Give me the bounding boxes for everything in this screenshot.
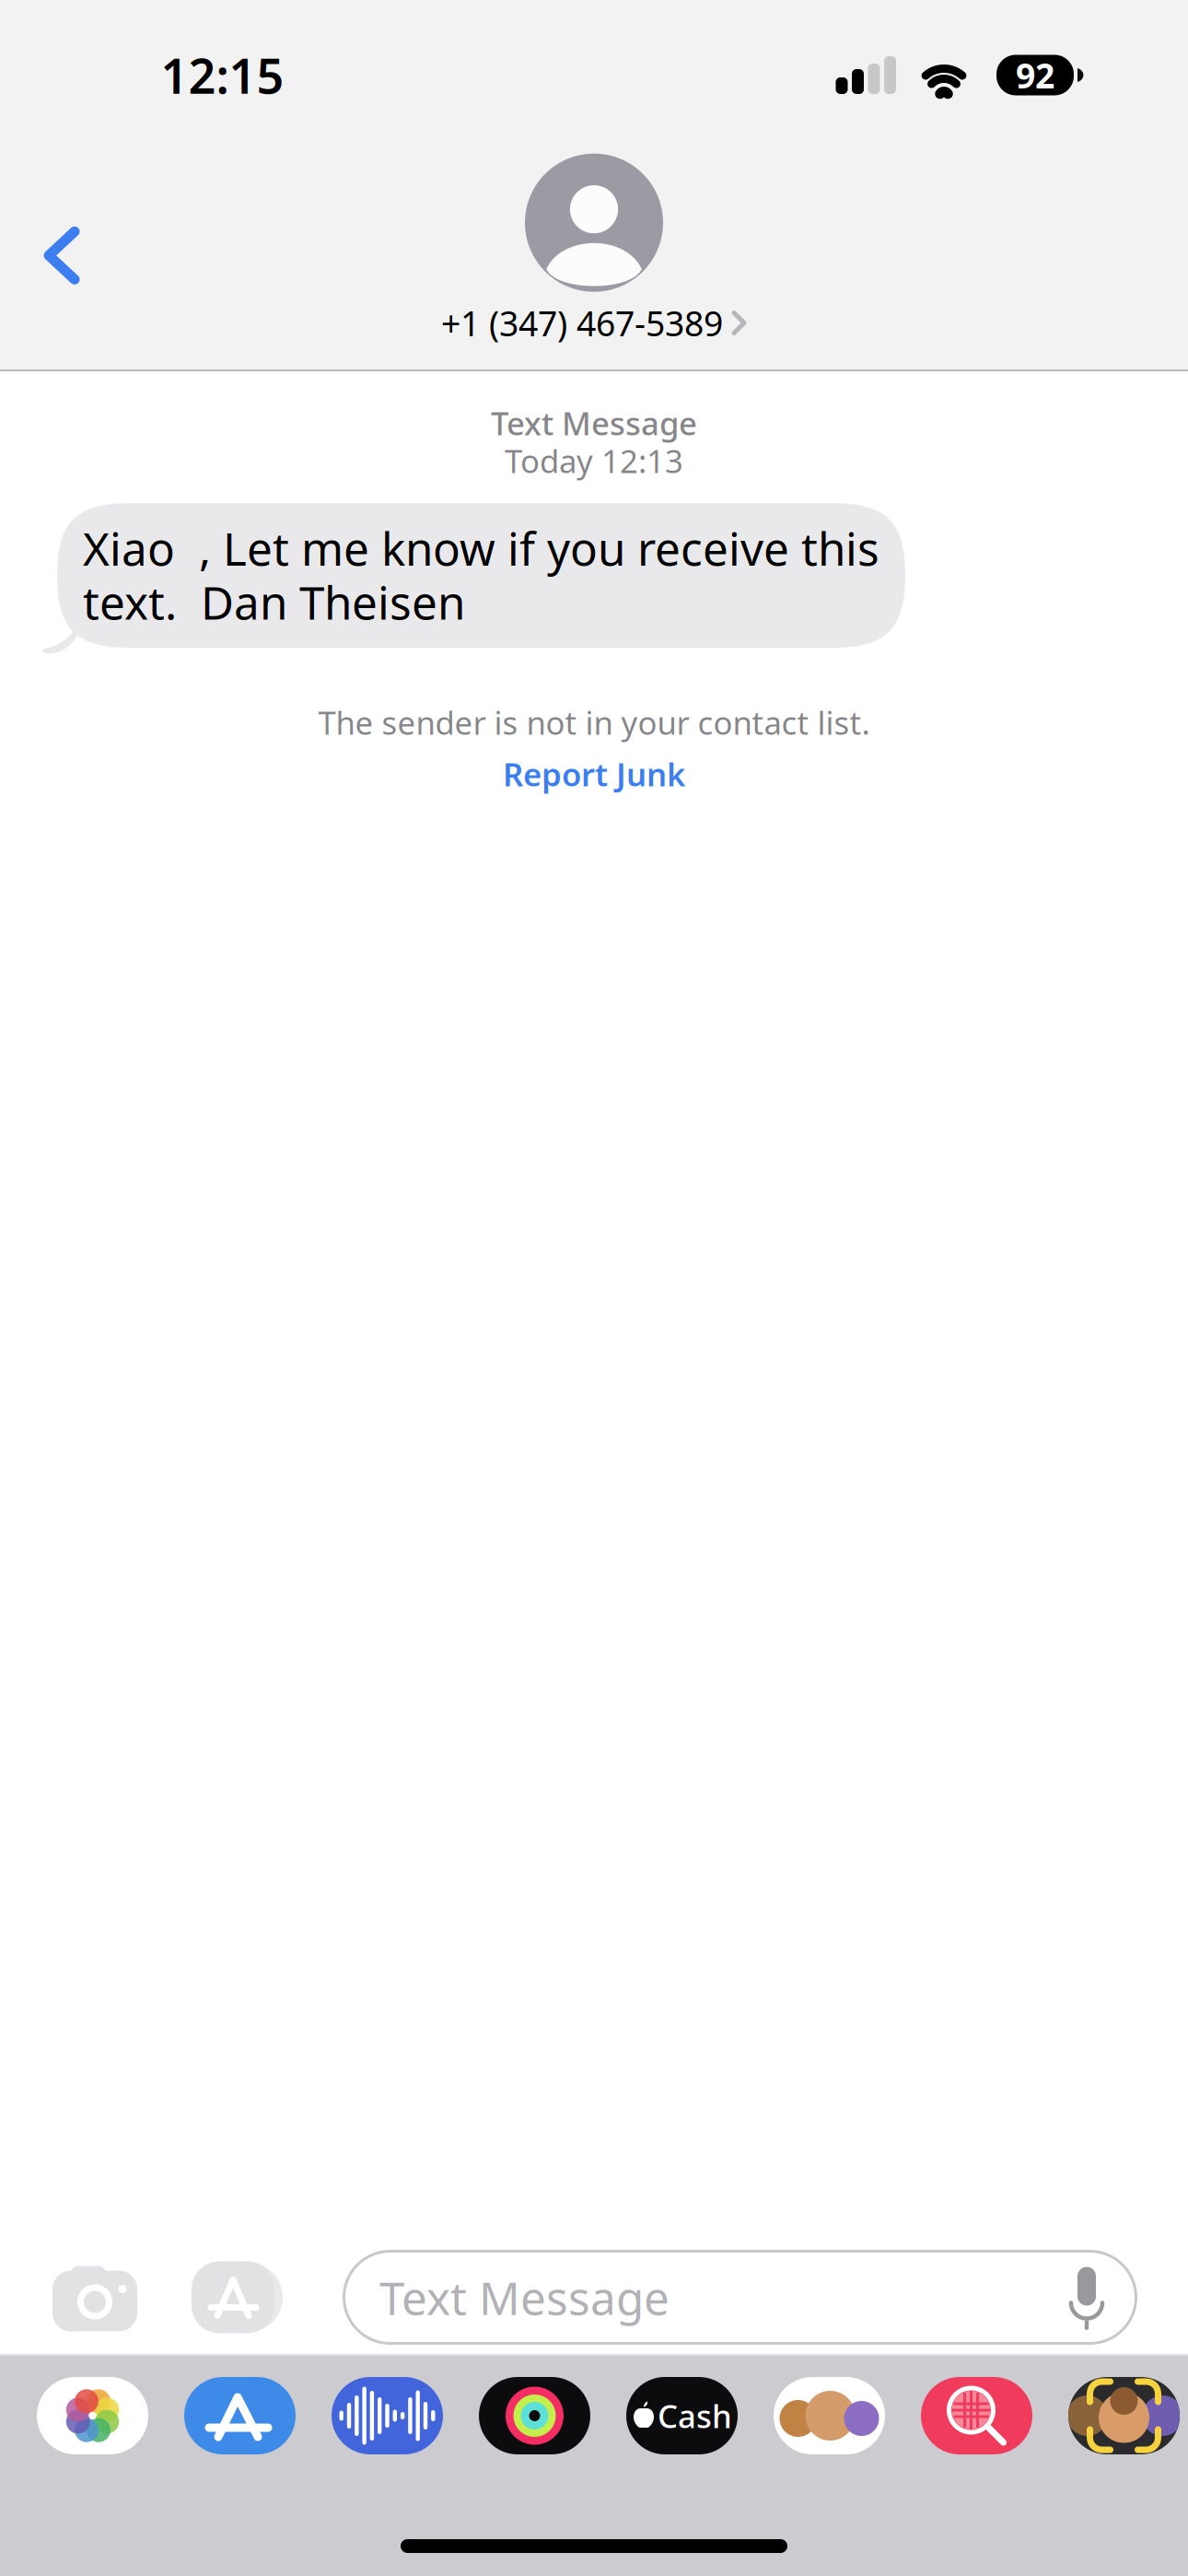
staticText: +1 (347) 467-5389 [441, 300, 723, 346]
button[interactable]: Camera [44, 2247, 146, 2348]
button[interactable]: Memoji Stickers [1068, 2377, 1180, 2454]
button[interactable]: Back [6, 200, 117, 311]
staticText: 92 [1016, 52, 1054, 98]
button[interactable]: Apps [182, 2247, 284, 2348]
button[interactable]: App Store [184, 2377, 296, 2454]
button[interactable]: Images [921, 2377, 1032, 2454]
button[interactable]: Audio [332, 2377, 443, 2454]
button[interactable]: Apple Cash [626, 2377, 738, 2454]
staticText: 12:15 [161, 43, 284, 107]
staticText: Xiao , Let me know if you receive this t… [83, 518, 879, 632]
staticText: The sender is not in your contact list. [318, 701, 870, 744]
staticText: Today 12:13 [505, 439, 683, 482]
staticText: Text Message [491, 402, 697, 444]
staticText: Text Message [379, 2267, 670, 2327]
button[interactable]: Report Junk [503, 753, 685, 795]
staticText: Report Junk [503, 753, 685, 795]
button[interactable]: Text Message [343, 2250, 1137, 2345]
staticText: Cash [658, 2395, 732, 2437]
button[interactable]: Fitness [479, 2377, 590, 2454]
button[interactable]: Photos [37, 2377, 148, 2454]
button[interactable]: Memoji [774, 2377, 885, 2454]
